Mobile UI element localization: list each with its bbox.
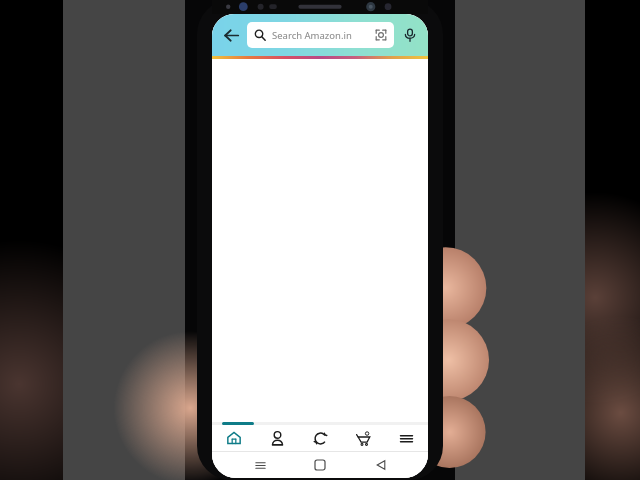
button[interactable]: Account [256, 425, 299, 451]
staticText: Search Amazon.in [272, 29, 375, 42]
other: Scan [375, 29, 387, 41]
button[interactable]: Home [307, 452, 333, 478]
button[interactable]: Cart [342, 425, 385, 451]
button[interactable]: Recents [247, 452, 273, 478]
button[interactable]: Home [212, 425, 256, 451]
button[interactable]: Refresh [299, 425, 342, 451]
button[interactable]: Back [368, 452, 394, 478]
button[interactable]: Search Amazon.in [247, 22, 394, 48]
button[interactable]: Back [218, 22, 244, 48]
button[interactable]: Menu [385, 425, 428, 451]
button[interactable]: Voice search [398, 23, 422, 47]
